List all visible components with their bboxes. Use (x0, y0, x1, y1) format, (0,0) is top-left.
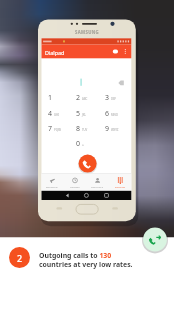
staticText: 1 (48, 93, 53, 103)
staticText: Dialpad (45, 49, 65, 56)
staticText: ROAMING (46, 185, 58, 188)
staticText: Outgoing calls to 130 countries at very … (39, 251, 133, 269)
button[interactable]: 1 (41, 90, 67, 104)
button[interactable]: 4 (41, 106, 67, 120)
staticText: 5 (76, 109, 81, 119)
button[interactable]: ROAMING (41, 174, 63, 191)
staticText: CONTACTS (91, 185, 103, 188)
staticText: PQRS (54, 128, 62, 132)
staticText: TUV (82, 128, 88, 132)
staticText: 4 (48, 109, 53, 119)
staticText: 2 (17, 252, 23, 264)
staticText: HISTORY (70, 185, 80, 188)
button[interactable]: Dialpad (42, 45, 132, 59)
button[interactable]: 3 (98, 90, 124, 104)
staticText: MNO (111, 113, 118, 117)
staticText: 8 (76, 124, 81, 134)
staticText: SAMSUNG (75, 29, 100, 35)
staticText: ABC (82, 97, 88, 101)
button[interactable]: 9 (98, 121, 124, 135)
button[interactable]: 6 (98, 106, 124, 120)
button[interactable]: 2 (9, 247, 30, 268)
button[interactable]: HISTORY (64, 174, 86, 191)
staticText: 2 (76, 93, 81, 103)
staticText: + (82, 142, 84, 147)
staticText: 0 (76, 139, 81, 149)
button[interactable]: CONTACTS (86, 174, 108, 191)
staticText: 6 (105, 109, 110, 119)
button[interactable]: 7 (41, 121, 67, 135)
staticText: 3 (105, 93, 110, 103)
staticText: 7 (48, 124, 53, 134)
button[interactable]: 5 (69, 106, 95, 120)
staticText: JKL (82, 113, 86, 117)
button[interactable]: 0 (69, 136, 95, 150)
staticText: 9 (105, 124, 110, 134)
button[interactable]: 2 (69, 90, 95, 104)
staticText: DIALPAD (115, 185, 125, 188)
button[interactable]: 8 (69, 121, 95, 135)
staticText: GHI (54, 113, 60, 117)
staticText: DEF (111, 97, 117, 101)
staticText: WXYZ (111, 128, 119, 132)
button[interactable]: DIALPAD (109, 174, 131, 191)
